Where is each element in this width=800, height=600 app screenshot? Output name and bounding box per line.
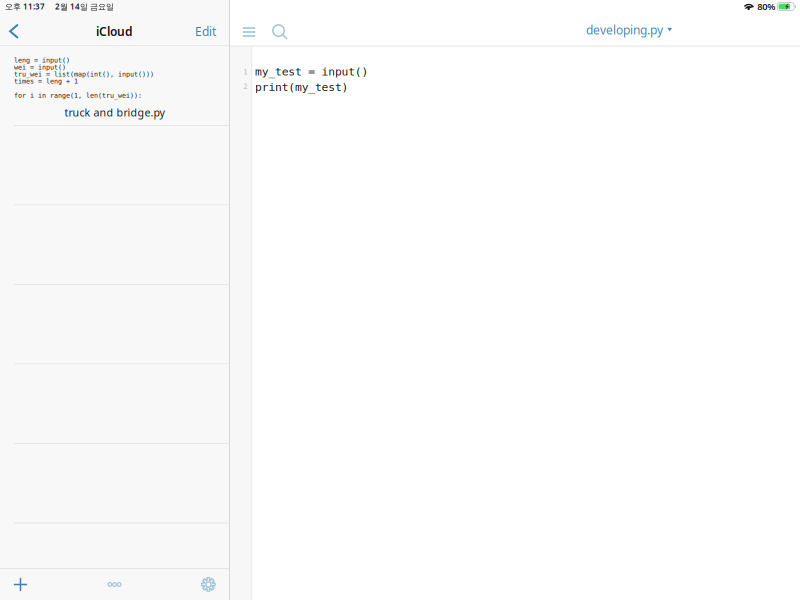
button[interactable]: Menu — [234, 18, 264, 46]
staticText: developing.py — [586, 22, 663, 38]
staticText: 1 — [243, 68, 247, 76]
button[interactable]: New file — [0, 569, 41, 600]
staticText: Edit — [195, 23, 216, 39]
button[interactable]: leng = input() — [0, 46, 229, 126]
button[interactable]: Edit — [182, 16, 229, 46]
staticText: times = leng + 1 — [14, 77, 78, 85]
staticText: for i in range(1, len(tru_wei)): — [14, 91, 142, 99]
button[interactable]: Settings — [188, 569, 229, 600]
button[interactable]: More — [94, 569, 135, 600]
staticText: iCloud — [96, 23, 133, 39]
staticText: 2월 14일 금요일 — [55, 1, 114, 12]
button[interactable]: Back — [0, 18, 30, 45]
staticText: 2 — [243, 82, 247, 91]
staticText: leng = input() — [14, 56, 70, 64]
staticText: my_test = input() — [255, 65, 368, 78]
button[interactable]: developing.py — [586, 14, 672, 46]
staticText: wei = input() — [14, 63, 66, 71]
staticText: truck and bridge.py — [64, 105, 164, 119]
staticText: 80% — [757, 0, 775, 13]
staticText: tru_wei = list(map(int(), input())) — [14, 70, 154, 78]
staticText: print(my_test) — [255, 80, 349, 94]
staticText: 오후 11:37 — [5, 1, 45, 12]
button[interactable]: Search — [264, 18, 296, 46]
